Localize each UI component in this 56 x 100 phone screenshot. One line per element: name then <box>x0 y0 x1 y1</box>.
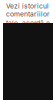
staticText: tale, acordă o notă <box>6 19 50 35</box>
staticText: Vezi istoricul comentariilor <box>6 2 50 18</box>
